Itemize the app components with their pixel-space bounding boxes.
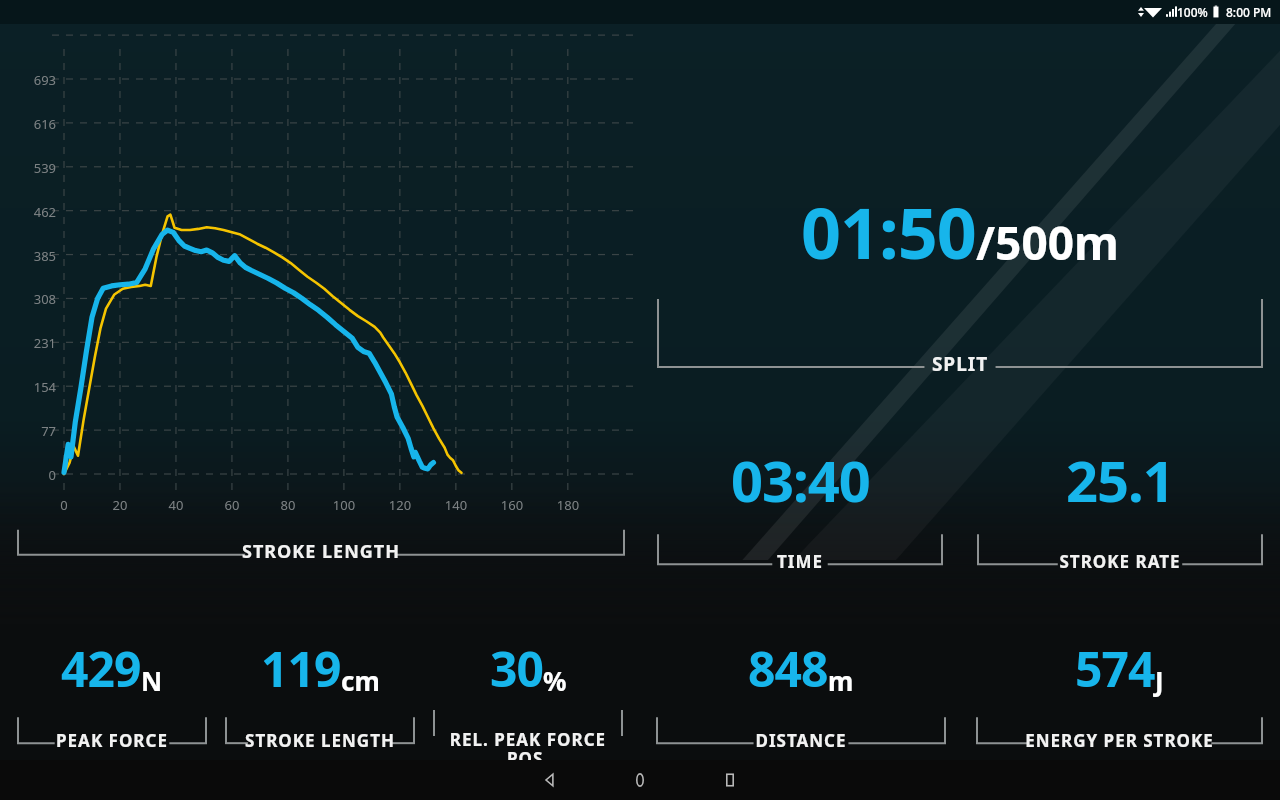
staticText: ENERGY PER STROKE	[976, 729, 1263, 752]
staticText: 25.1	[1066, 442, 1174, 518]
button[interactable]: 30	[433, 636, 623, 768]
staticText: 40	[156, 496, 196, 514]
staticText: STROKE RATE	[977, 550, 1263, 573]
staticText: TIME	[657, 550, 943, 573]
staticText: 180	[548, 496, 588, 514]
staticText: 462	[22, 203, 56, 221]
staticText: STROKE LENGTH	[225, 729, 415, 752]
staticText: 616	[22, 115, 56, 133]
staticText: 60	[212, 496, 252, 514]
staticText: 120	[380, 496, 420, 514]
button[interactable]: 119	[225, 636, 415, 750]
staticText: 8:00 PM	[1226, 4, 1272, 20]
staticText: 77	[22, 422, 56, 440]
button[interactable]: Recent apps	[685, 760, 775, 800]
staticText: 119	[261, 636, 341, 701]
staticText: 693	[22, 71, 56, 89]
staticText: STROKE LENGTH	[17, 539, 625, 564]
staticText: 100%	[1177, 4, 1208, 20]
staticText: 574	[1075, 636, 1155, 701]
staticText: 20	[100, 496, 140, 514]
button[interactable]: Back	[505, 760, 595, 800]
staticText: DISTANCE	[656, 729, 946, 752]
staticText: 848	[748, 636, 828, 701]
button[interactable]: Home	[595, 760, 685, 800]
staticText: 30	[490, 636, 543, 701]
staticText: N	[141, 663, 163, 698]
staticText: 01:50	[801, 184, 976, 279]
staticText: 160	[492, 496, 532, 514]
button[interactable]: 848	[656, 636, 946, 750]
button[interactable]: 429	[17, 636, 207, 750]
staticText: 539	[22, 159, 56, 177]
button[interactable]: 25.1	[977, 442, 1263, 571]
staticText: 0	[44, 496, 84, 514]
staticText: REL. PEAK FORCE POS.	[433, 728, 623, 770]
staticText: %	[543, 663, 567, 698]
staticText: 100	[324, 496, 364, 514]
button[interactable]: 693	[0, 24, 640, 514]
staticText: PEAK FORCE	[17, 729, 207, 752]
staticText: /500m	[976, 211, 1119, 274]
staticText: 140	[436, 496, 476, 514]
button[interactable]: 574	[976, 636, 1263, 750]
staticText: 308	[22, 290, 56, 308]
staticText: 0	[22, 466, 56, 484]
staticText: SPLIT	[657, 351, 1263, 377]
staticText: 154	[22, 378, 56, 396]
button[interactable]: STROKE LENGTH	[17, 520, 625, 564]
staticText: m	[828, 663, 854, 698]
staticText: 385	[22, 247, 56, 265]
staticText: 231	[22, 334, 56, 352]
staticText: 429	[61, 636, 141, 701]
staticText: 80	[268, 496, 308, 514]
button[interactable]: 03:40	[657, 442, 943, 571]
staticText: J	[1155, 663, 1164, 698]
button[interactable]: 01:50	[657, 184, 1263, 373]
staticText: 03:40	[731, 442, 870, 518]
staticText: cm	[341, 663, 380, 698]
